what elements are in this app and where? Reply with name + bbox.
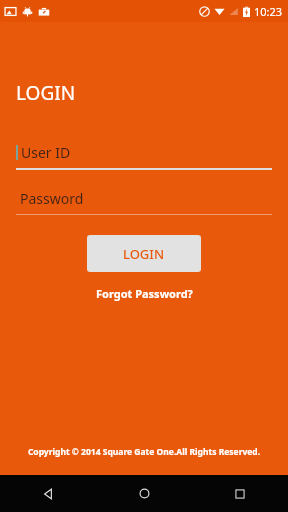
- button[interactable]: LOGIN: [87, 235, 201, 272]
- button[interactable]: Home: [96, 475, 192, 512]
- button[interactable]: Password: [16, 189, 272, 215]
- staticText: 10:23: [254, 4, 283, 19]
- staticText: LOGIN: [16, 80, 76, 106]
- button[interactable]: User ID: [16, 143, 272, 170]
- staticText: User ID: [21, 143, 71, 162]
- button[interactable]: Back: [0, 475, 96, 512]
- staticText: LOGIN: [123, 245, 165, 263]
- staticText: Forgot Password?: [96, 286, 193, 301]
- button[interactable]: Forgot Password?: [90, 284, 199, 303]
- staticText: Copyright © 2014 Square Gate One.All Rig…: [0, 446, 288, 458]
- button[interactable]: Recent apps: [192, 475, 288, 512]
- staticText: Password: [20, 189, 84, 208]
